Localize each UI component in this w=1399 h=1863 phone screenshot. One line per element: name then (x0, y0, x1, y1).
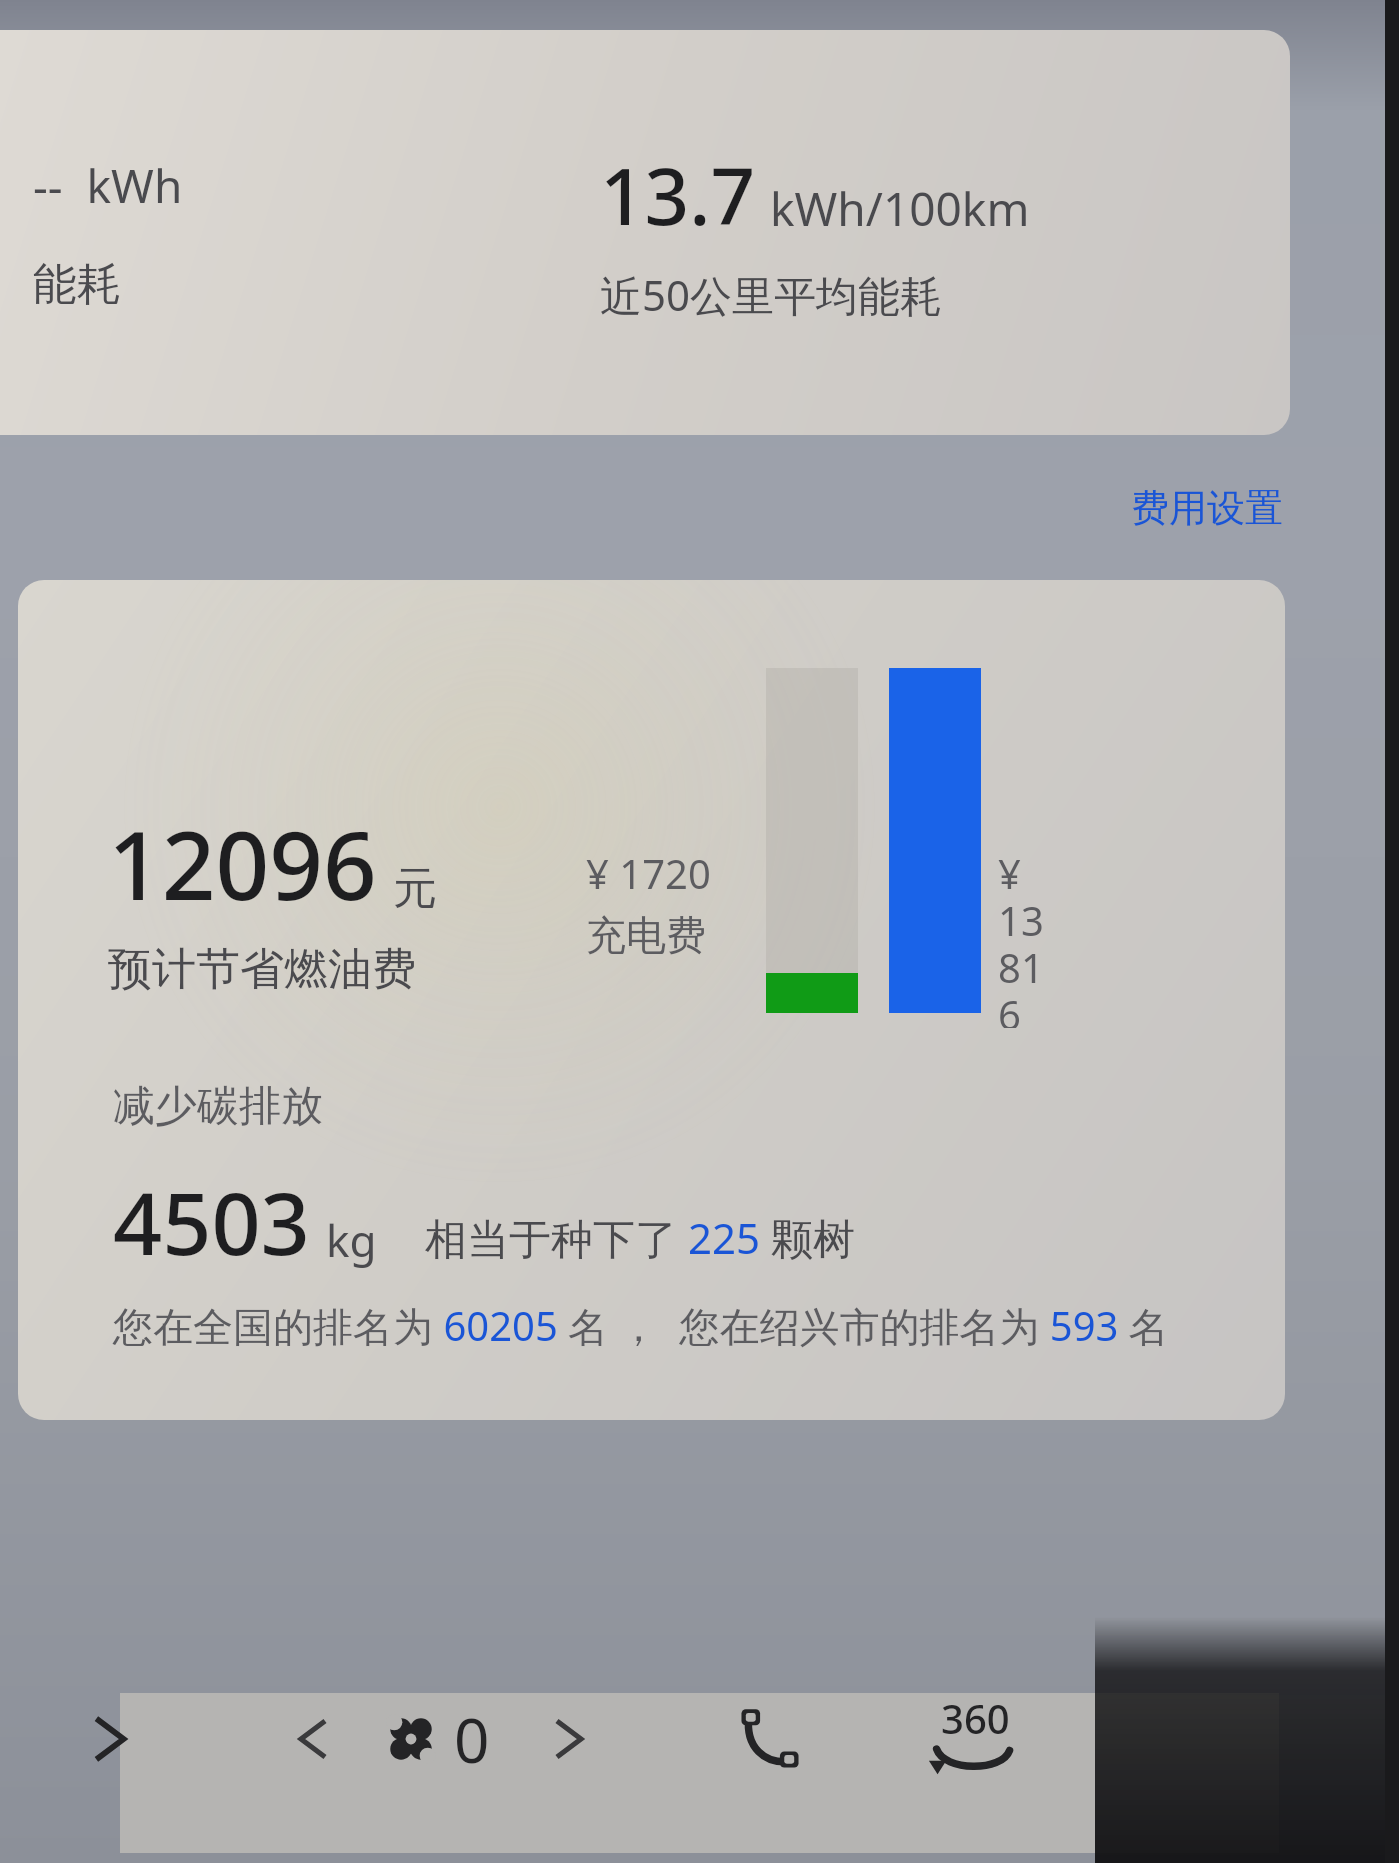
staticText: 4503 (113, 1163, 310, 1280)
button[interactable]: Expand (72, 1701, 148, 1777)
staticText: ¥ 13816 (998, 846, 1058, 1028)
button[interactable]: Phone (724, 1693, 816, 1785)
button[interactable]: -- kWh (0, 30, 1290, 435)
staticText: 0 (454, 1697, 490, 1781)
staticText: -- kWh (33, 154, 183, 217)
button[interactable]: 12096 (18, 580, 1285, 1420)
staticText: 360 (941, 1691, 1010, 1745)
staticText: ¥ 1720 (586, 846, 711, 900)
staticText: 费用设置 (1131, 484, 1283, 532)
staticText: 充电费 (586, 910, 706, 960)
staticText: 预计节省燃油费 (108, 942, 416, 997)
staticText: 元 (393, 861, 437, 916)
staticText: kg (326, 1210, 377, 1270)
button[interactable]: Decrease fan speed (276, 1702, 350, 1776)
button[interactable]: 360 camera (920, 1684, 1030, 1794)
staticText: 您在全国的排名为 60205 名 ， 您在绍兴市的排名为 593 名 (113, 1298, 1169, 1353)
button[interactable]: 费用设置 (1123, 476, 1291, 540)
staticText: 13.7 (600, 142, 756, 248)
button[interactable]: Fan speed (378, 1697, 496, 1781)
staticText: 12096 (108, 800, 377, 928)
staticText: 能耗 (33, 257, 121, 312)
staticText: 相当于种下了 225 颗树 (425, 1209, 855, 1266)
staticText: 近50公里平均能耗 (600, 266, 943, 323)
staticText: kWh/100km (770, 177, 1030, 240)
staticText: 减少碳排放 (113, 1080, 323, 1133)
button[interactable]: Increase fan speed (532, 1702, 606, 1776)
